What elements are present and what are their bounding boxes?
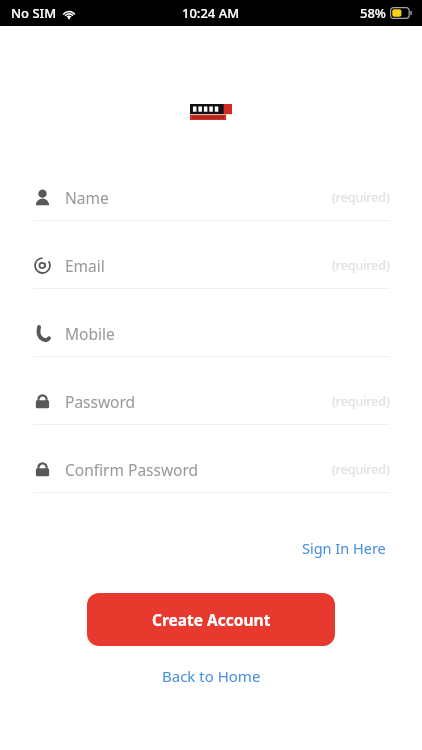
staticText: 58% bbox=[360, 4, 386, 22]
staticText: (required) bbox=[332, 461, 390, 478]
staticText: Create Account bbox=[152, 609, 271, 630]
button[interactable]: Mobile bbox=[0, 310, 422, 378]
staticText: (required) bbox=[332, 257, 390, 274]
staticText: Name bbox=[65, 187, 109, 208]
staticText: (required) bbox=[332, 393, 390, 410]
button[interactable]: Create Account bbox=[87, 593, 335, 646]
staticText: Back to Home bbox=[162, 666, 261, 686]
button[interactable]: Back to Home bbox=[152, 658, 271, 694]
staticText: Confirm Password bbox=[65, 459, 199, 480]
button[interactable]: Sign In Here bbox=[298, 532, 390, 564]
staticText: Mobile bbox=[65, 323, 115, 344]
staticText: 10:24 AM bbox=[182, 4, 240, 22]
button[interactable]: Confirm Password bbox=[0, 446, 422, 514]
button[interactable]: Name bbox=[0, 174, 422, 242]
staticText: Email bbox=[65, 255, 105, 276]
button[interactable]: Password bbox=[0, 378, 422, 446]
button[interactable]: Email bbox=[0, 242, 422, 310]
staticText: Password bbox=[65, 391, 136, 412]
staticText: (required) bbox=[332, 189, 390, 206]
staticText: Sign In Here bbox=[302, 538, 386, 558]
staticText: No SIM bbox=[11, 4, 57, 22]
